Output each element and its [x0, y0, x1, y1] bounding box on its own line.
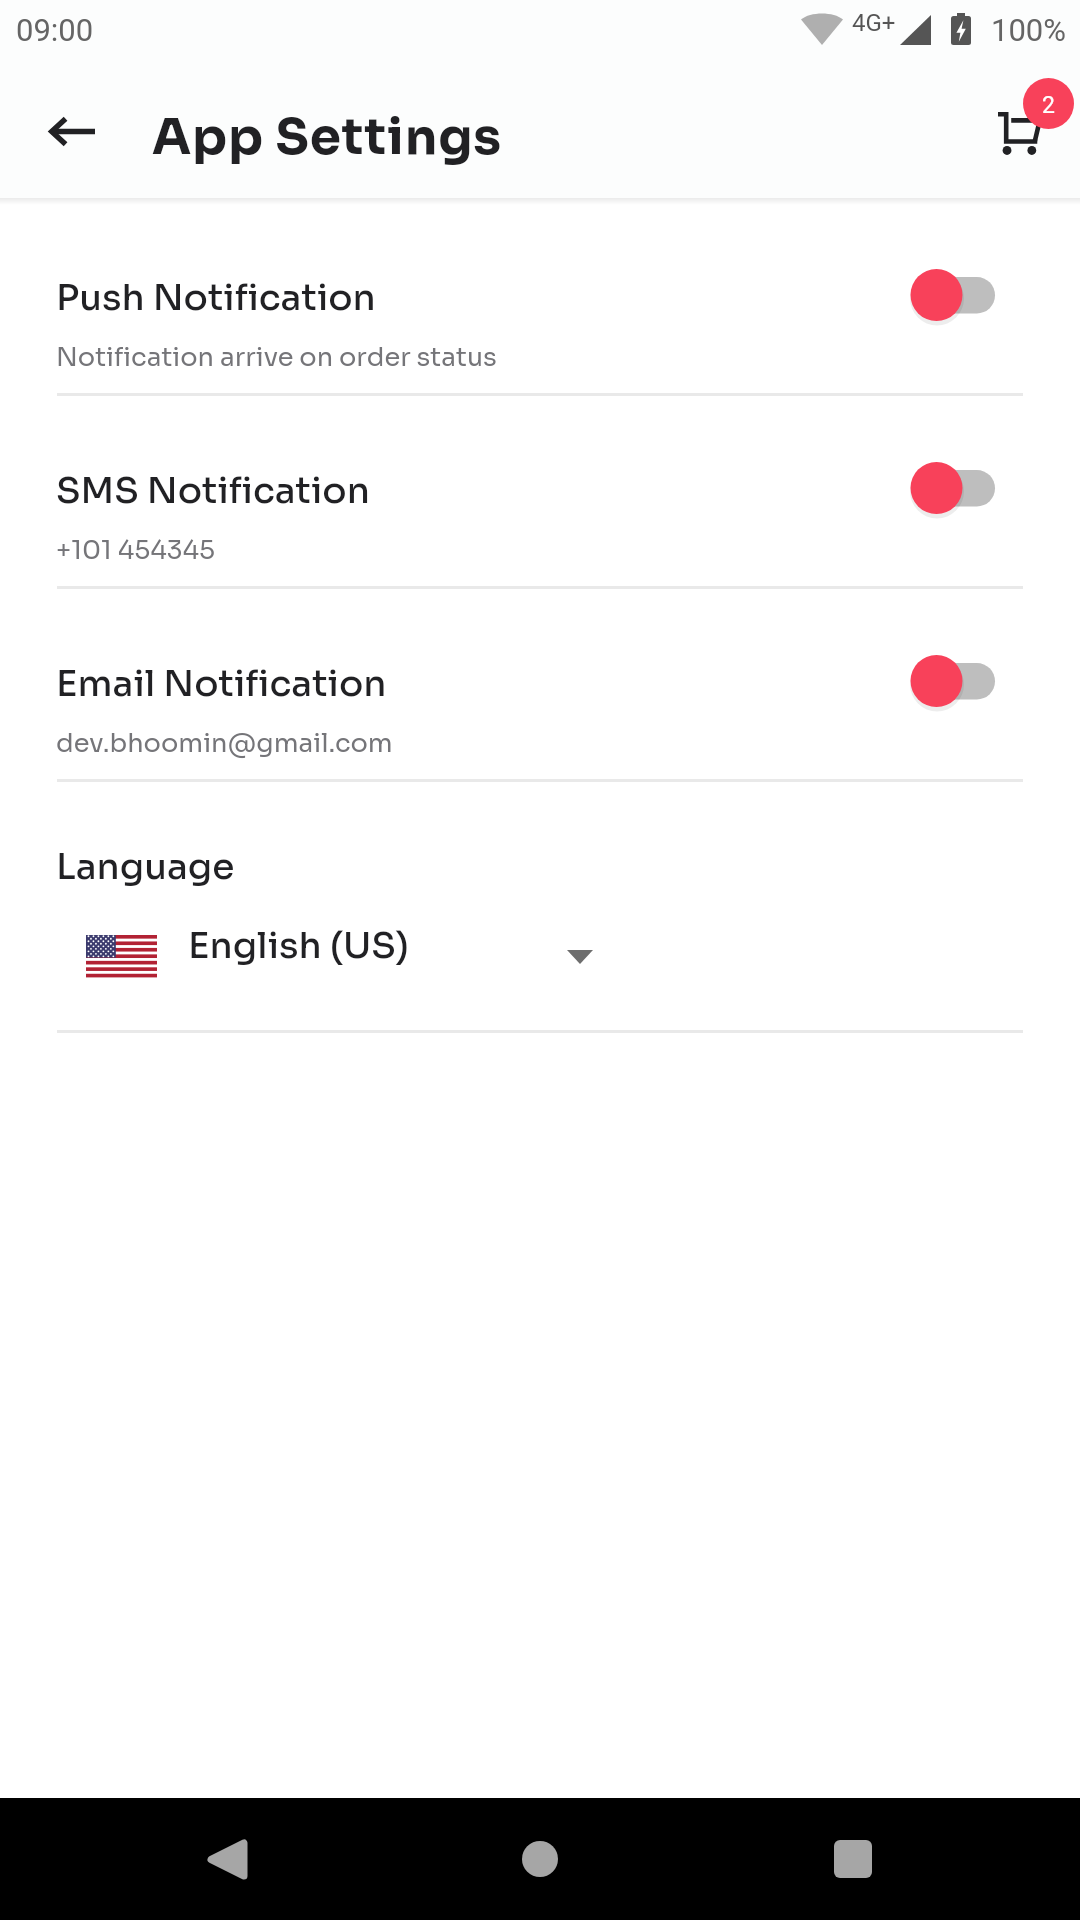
staticText: English (US) — [188, 923, 409, 968]
button[interactable]: Back — [25, 84, 119, 178]
staticText: SMS Notification — [56, 468, 370, 513]
button[interactable]: Recent apps — [793, 1799, 913, 1919]
staticText: 100% — [991, 12, 1066, 48]
staticText: 4G+ — [852, 9, 896, 37]
button[interactable]: SMS Notification switch — [897, 452, 1007, 524]
staticText: Notification arrive on order status — [56, 341, 497, 373]
button[interactable]: Push Notification — [0, 205, 1080, 395]
button[interactable]: Shopping cart — [975, 85, 1065, 175]
staticText: Email Notification — [56, 661, 387, 706]
staticText: 2 — [1042, 92, 1055, 119]
staticText: 09:00 — [16, 12, 94, 48]
button[interactable]: Push Notification switch — [897, 259, 1007, 331]
button[interactable]: Email Notification switch — [897, 645, 1007, 717]
staticText: Language — [56, 844, 235, 889]
staticText: App Settings — [152, 105, 503, 168]
staticText: dev.bhoomin@gmail.com — [56, 727, 393, 759]
button[interactable]: SMS Notification — [0, 398, 1080, 588]
staticText: +101 454345 — [56, 534, 215, 566]
button[interactable]: Email Notification — [0, 591, 1080, 781]
button[interactable]: Back — [166, 1799, 286, 1919]
button[interactable]: Home — [480, 1799, 600, 1919]
button[interactable]: English (US) — [0, 914, 1080, 994]
staticText: Push Notification — [56, 275, 376, 320]
